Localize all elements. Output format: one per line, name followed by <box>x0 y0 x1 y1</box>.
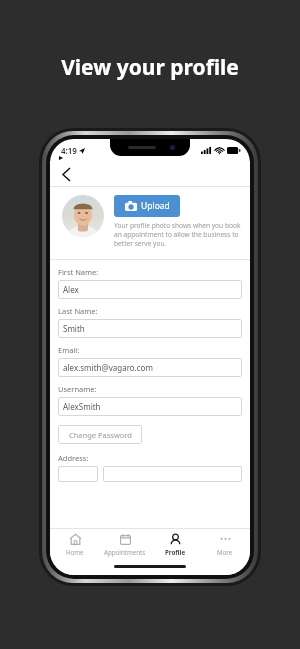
staticText: Smith <box>63 323 85 334</box>
button[interactable]: Upload <box>114 195 180 217</box>
staticText: First Name: <box>58 267 99 277</box>
button[interactable]: Change Password <box>58 425 142 444</box>
button[interactable] <box>58 466 98 482</box>
staticText: Username: <box>58 384 97 394</box>
staticText: Alex <box>63 284 79 295</box>
button[interactable]: Smith <box>58 319 242 338</box>
button[interactable]: AlexSmith <box>58 397 242 416</box>
button[interactable]: Home <box>50 529 100 556</box>
staticText: View your profile <box>0 53 300 82</box>
staticText: AlexSmith <box>63 401 101 412</box>
staticText: 4:19 <box>61 145 77 156</box>
staticText: Profile <box>165 548 186 556</box>
button[interactable]: More <box>200 529 250 556</box>
staticText: Appointments <box>104 548 146 556</box>
staticText: Your profile photo shows when you book a… <box>114 221 241 248</box>
button[interactable]: alex.smith@vagaro.com <box>58 358 242 377</box>
staticText: Last Name: <box>58 306 98 316</box>
button[interactable]: Appointments <box>100 529 150 556</box>
button[interactable] <box>103 466 242 482</box>
button[interactable]: Profile <box>150 529 200 556</box>
button[interactable]: Back <box>56 164 76 184</box>
staticText: Email: <box>58 345 80 355</box>
button[interactable]: Alex <box>58 280 242 299</box>
staticText: alex.smith@vagaro.com <box>63 362 153 373</box>
button[interactable]: Profile photo <box>62 195 104 237</box>
staticText: Address: <box>58 453 89 463</box>
staticText: Upload <box>141 200 170 212</box>
staticText: Home <box>66 548 84 556</box>
staticText: More <box>217 548 233 556</box>
staticText: Change Password <box>69 430 132 440</box>
